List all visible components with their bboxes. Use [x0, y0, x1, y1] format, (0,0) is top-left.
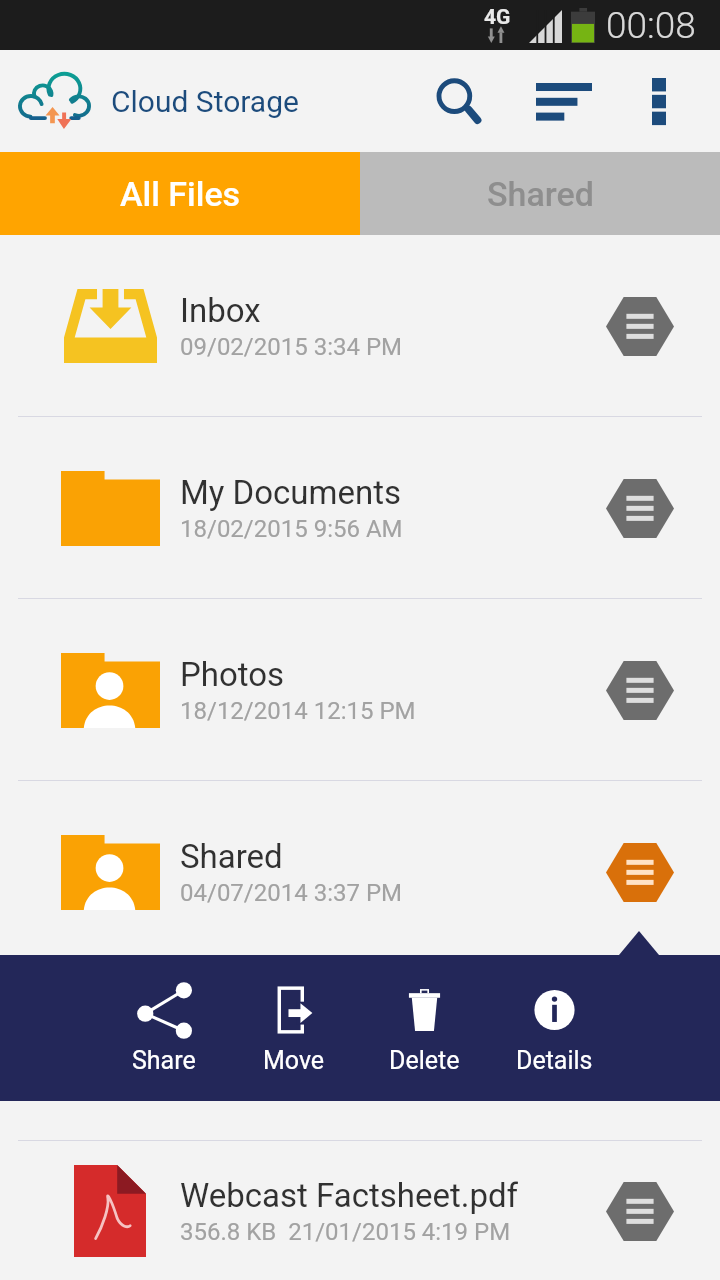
staticText: 09/02/2015 3:34 PM [180, 333, 402, 361]
button[interactable]: Item options [585, 635, 695, 745]
button[interactable]: My Documents [0, 417, 720, 598]
staticText: Cloud Storage [111, 84, 299, 119]
staticText: 4G [484, 5, 511, 30]
button[interactable]: Share [99, 955, 229, 1101]
staticText: 18/02/2015 9:56 AM [180, 515, 403, 543]
staticText: Webcast Factsheet.pdf [180, 1176, 519, 1215]
staticText: Shared [487, 174, 594, 214]
staticText: Share [132, 1046, 196, 1075]
staticText: 00:08 [606, 4, 696, 47]
button[interactable]: Webcast Factsheet.pdf [0, 1141, 720, 1280]
staticText: All Files [120, 174, 241, 214]
button[interactable]: Item options [585, 817, 695, 927]
staticText: Inbox [180, 291, 261, 330]
button[interactable]: Item options [585, 453, 695, 563]
button[interactable]: More options [617, 50, 701, 152]
button[interactable]: All Files [0, 152, 360, 235]
button[interactable]: Item options [585, 1156, 695, 1266]
button[interactable]: Sort [521, 50, 617, 152]
staticText: 18/12/2014 12:15 PM [180, 697, 416, 725]
staticText: Photos [180, 655, 285, 694]
button[interactable]: Inbox [0, 235, 720, 416]
staticText: My Documents [180, 473, 402, 512]
staticText: Shared [180, 837, 283, 876]
button[interactable]: Photos [0, 599, 720, 780]
staticText: 356.8 KB 21/01/2015 4:19 PM [180, 1218, 511, 1246]
button[interactable]: Move [229, 955, 359, 1101]
button[interactable]: Item options [585, 271, 695, 381]
button[interactable]: Shared [360, 152, 720, 235]
button[interactable]: Search [431, 50, 521, 152]
staticText: Delete [389, 1046, 460, 1075]
button[interactable]: Details [489, 955, 619, 1101]
staticText: 04/07/2014 3:37 PM [180, 879, 402, 907]
button[interactable]: Delete [359, 955, 489, 1101]
staticText: Move [263, 1046, 325, 1075]
button[interactable]: Shared [0, 781, 720, 962]
staticText: Details [516, 1046, 593, 1075]
